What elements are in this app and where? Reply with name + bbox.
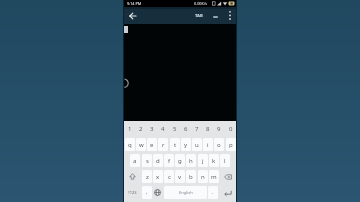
staticText: 6 <box>184 125 188 133</box>
button[interactable] <box>124 170 141 183</box>
button[interactable]: 6 <box>181 122 191 135</box>
staticText: 7 <box>195 125 199 133</box>
button[interactable] <box>152 186 163 199</box>
staticText: 2 <box>139 125 143 133</box>
button[interactable]: TAB <box>192 10 206 21</box>
staticText: r <box>162 141 165 149</box>
staticText: g <box>178 157 182 165</box>
button[interactable] <box>210 11 221 22</box>
button[interactable]: u <box>192 138 202 151</box>
button[interactable]: 8 <box>203 122 213 135</box>
button[interactable]: m <box>209 170 219 183</box>
button[interactable]: 7 <box>192 122 202 135</box>
button[interactable]: 0 <box>226 122 236 135</box>
button[interactable] <box>224 9 235 22</box>
staticText: 0 <box>229 125 233 133</box>
button[interactable] <box>219 170 236 183</box>
staticText: q <box>128 141 132 149</box>
staticText: 9:14 PM <box>127 1 142 6</box>
button[interactable]: d <box>153 154 163 167</box>
staticText: 1 <box>128 125 132 133</box>
staticText: n <box>201 173 205 181</box>
staticText: 8 <box>206 125 210 133</box>
staticText: TAB <box>195 13 203 19</box>
staticText: m <box>211 173 217 181</box>
staticText: 0.00K/s <box>194 1 208 6</box>
staticText: h <box>189 157 193 165</box>
staticText: b <box>189 173 193 181</box>
staticText: e <box>150 141 154 149</box>
button[interactable]: i <box>203 138 213 151</box>
button[interactable]: l <box>220 154 230 167</box>
button[interactable]: n <box>198 170 208 183</box>
button[interactable]: y <box>181 138 191 151</box>
staticText: p <box>229 141 233 149</box>
button[interactable]: . <box>208 186 218 199</box>
staticText: k <box>212 157 216 165</box>
button[interactable]: b <box>186 170 196 183</box>
staticText: s <box>146 157 149 165</box>
staticText: 3 <box>150 125 154 133</box>
staticText: y <box>184 141 188 149</box>
staticText: 4 <box>161 125 165 133</box>
button[interactable]: 2 <box>136 122 146 135</box>
staticText: , <box>146 189 148 196</box>
staticText: z <box>146 173 149 181</box>
button[interactable]: v <box>175 170 185 183</box>
button[interactable]: ?123 <box>124 186 141 199</box>
button[interactable]: 9 <box>214 122 224 135</box>
button[interactable]: z <box>142 170 152 183</box>
staticText: English <box>179 190 193 195</box>
button[interactable]: 3 <box>147 122 157 135</box>
button[interactable]: x <box>153 170 163 183</box>
button[interactable]: s <box>142 154 152 167</box>
button[interactable]: q <box>125 138 135 151</box>
button[interactable]: 1 <box>125 122 135 135</box>
button[interactable]: English <box>164 186 207 199</box>
button[interactable]: , <box>142 186 152 199</box>
button[interactable]: h <box>186 154 196 167</box>
button[interactable]: a <box>130 154 140 167</box>
button[interactable]: r <box>158 138 168 151</box>
button[interactable]: j <box>198 154 208 167</box>
button[interactable]: g <box>175 154 185 167</box>
button[interactable]: 4 <box>158 122 168 135</box>
staticText: a <box>133 157 137 165</box>
button[interactable]: p <box>226 138 236 151</box>
staticText: w <box>139 141 144 149</box>
staticText: o <box>217 141 221 149</box>
staticText: i <box>207 141 209 149</box>
staticText: 9 <box>217 125 221 133</box>
staticText: t <box>174 141 177 149</box>
staticText: 5 <box>173 125 177 133</box>
staticText: x <box>156 173 160 181</box>
button[interactable]: k <box>209 154 219 167</box>
button[interactable]: o <box>214 138 224 151</box>
button[interactable]: e <box>147 138 157 151</box>
staticText: j <box>202 157 204 165</box>
button[interactable] <box>219 186 236 199</box>
staticText: c <box>168 173 171 181</box>
staticText: l <box>224 157 226 165</box>
button[interactable]: w <box>136 138 146 151</box>
button[interactable]: t <box>170 138 180 151</box>
button[interactable]: c <box>164 170 174 183</box>
button[interactable] <box>126 8 139 23</box>
staticText: d <box>156 157 160 165</box>
staticText: v <box>178 173 182 181</box>
staticText: u <box>195 141 199 149</box>
button[interactable]: 5 <box>170 122 180 135</box>
button[interactable]: f <box>164 154 174 167</box>
staticText: ?123 <box>128 190 137 195</box>
staticText: . <box>212 189 214 196</box>
staticText: f <box>168 157 171 165</box>
